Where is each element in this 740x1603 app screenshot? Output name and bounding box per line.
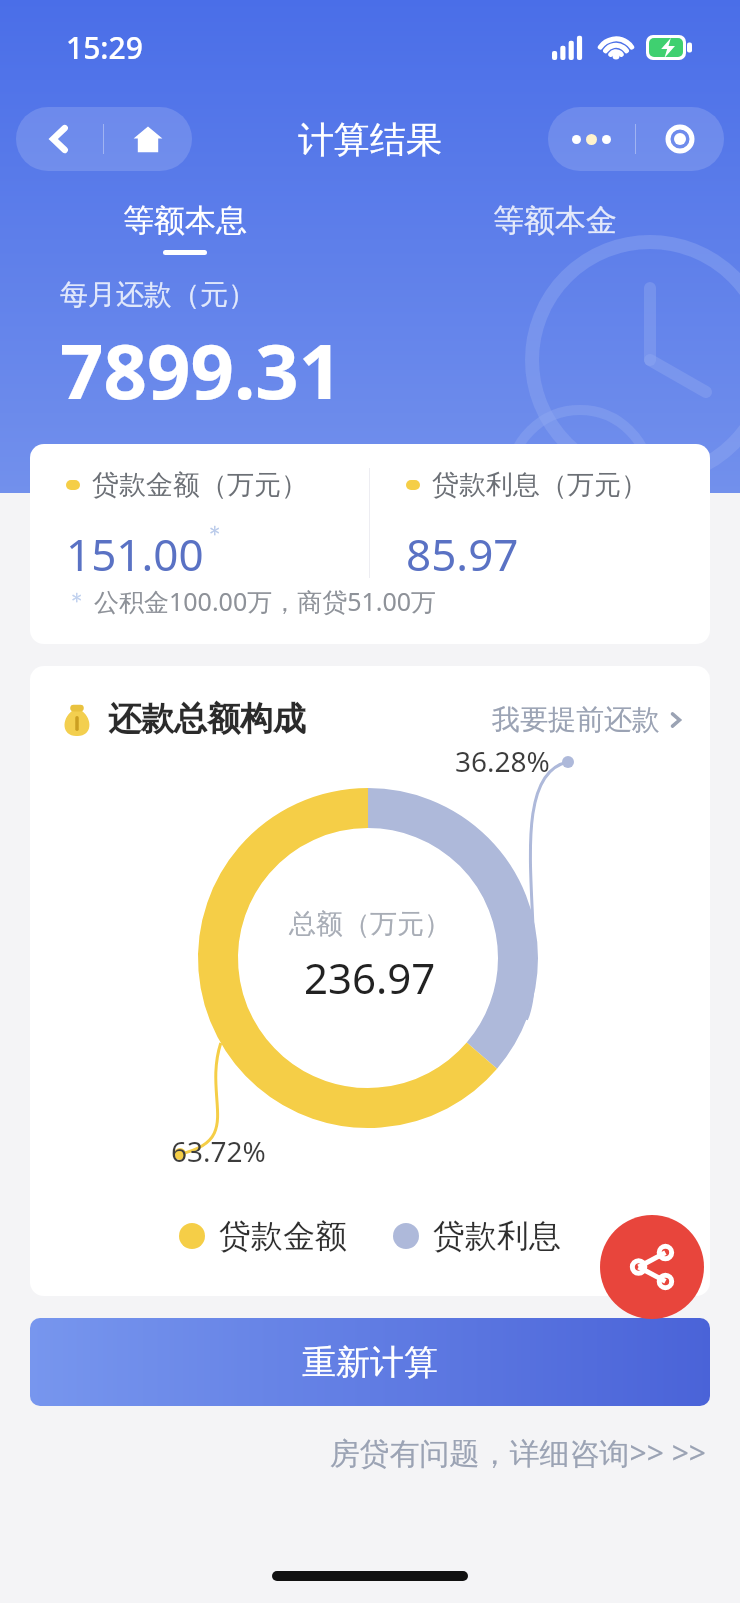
- staticText: 重新计算: [302, 1341, 438, 1384]
- staticText: 63.72%: [171, 1132, 266, 1170]
- staticText: 等额本息: [123, 201, 247, 240]
- staticText: 总额（万元）: [289, 907, 451, 941]
- staticText: ＊: [204, 520, 226, 548]
- staticText: 151.00: [66, 524, 204, 584]
- button[interactable]: 我要提前还款: [492, 702, 684, 737]
- button[interactable]: Share: [600, 1215, 704, 1319]
- button[interactable]: Back: [16, 107, 103, 171]
- staticText: 我要提前还款: [492, 702, 660, 737]
- staticText: 贷款金额（万元）: [92, 468, 308, 502]
- staticText: 贷款金额: [219, 1216, 347, 1256]
- staticText: 7899.31: [60, 318, 343, 422]
- staticText: 贷款利息（万元）: [432, 468, 648, 502]
- staticText: 36.28%: [455, 742, 550, 780]
- staticText: 等额本金: [493, 201, 617, 240]
- staticText: 贷款利息: [433, 1216, 561, 1256]
- staticText: 每月还款（元）: [60, 277, 256, 312]
- staticText: 还款总额构成: [108, 698, 306, 740]
- staticText: 236.97: [304, 949, 436, 1006]
- button[interactable]: Close: [636, 107, 724, 171]
- button[interactable]: 房贷有问题，详细咨询>> >>: [0, 1432, 706, 1473]
- staticText: 15:29: [66, 27, 143, 68]
- button[interactable]: More options: [548, 107, 635, 171]
- button[interactable]: Home: [104, 107, 192, 171]
- staticText: 计算结果: [298, 117, 442, 162]
- button[interactable]: 等额本金: [370, 183, 740, 273]
- button[interactable]: 等额本息: [0, 183, 370, 273]
- staticText: 公积金100.00万，商贷51.00万: [94, 584, 437, 618]
- staticText: ＊: [66, 587, 88, 615]
- button[interactable]: 重新计算: [30, 1318, 710, 1406]
- staticText: 85.97: [406, 524, 519, 584]
